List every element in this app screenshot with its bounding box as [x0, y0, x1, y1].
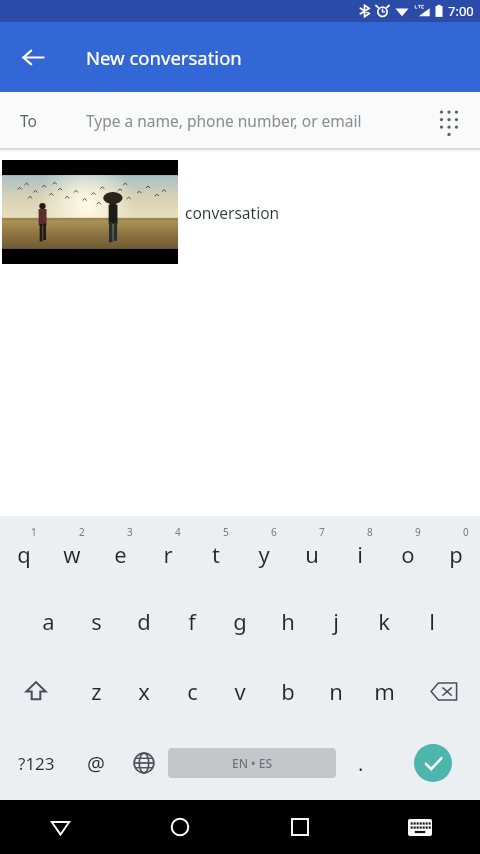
button[interactable]: Backspace	[408, 656, 480, 726]
staticText: i	[357, 539, 363, 569]
staticText: v	[234, 676, 246, 706]
staticText: t	[212, 539, 220, 569]
button[interactable]: q	[0, 516, 48, 586]
button[interactable]: h	[264, 586, 312, 656]
button[interactable]: u	[288, 516, 336, 586]
button[interactable]: l	[408, 586, 456, 656]
staticText: m	[374, 676, 395, 706]
staticText: l	[429, 606, 435, 636]
staticText: s	[91, 606, 102, 636]
button[interactable]: m	[360, 656, 408, 726]
staticText: w	[63, 539, 81, 569]
staticText: n	[329, 676, 343, 706]
staticText: u	[305, 539, 319, 569]
button[interactable]: o	[384, 516, 432, 586]
staticText: conversation	[185, 202, 280, 223]
staticText: h	[281, 606, 295, 636]
button[interactable]: b	[264, 656, 312, 726]
button[interactable]: v	[216, 656, 264, 726]
button[interactable]: c	[168, 656, 216, 726]
staticText: e	[114, 539, 127, 569]
staticText: To	[20, 110, 37, 131]
staticText: o	[401, 539, 415, 569]
button[interactable]: k	[360, 586, 408, 656]
button[interactable]: n	[312, 656, 360, 726]
button[interactable]: Space	[168, 748, 336, 778]
staticText: f	[188, 606, 196, 636]
staticText: .	[358, 750, 364, 777]
staticText: 0	[463, 525, 469, 539]
button[interactable]: j	[312, 586, 360, 656]
staticText: q	[17, 539, 31, 569]
button[interactable]: Home	[120, 800, 240, 854]
staticText: b	[281, 676, 295, 706]
button[interactable]: a	[24, 586, 72, 656]
staticText: 2	[79, 525, 85, 539]
staticText: 8	[367, 525, 373, 539]
button[interactable]: Shift	[0, 656, 72, 726]
button[interactable]: x	[120, 656, 168, 726]
button[interactable]: f	[168, 586, 216, 656]
button[interactable]: y	[240, 516, 288, 586]
button[interactable]: To	[0, 92, 480, 148]
staticText: c	[187, 676, 198, 706]
staticText: r	[163, 539, 173, 569]
button[interactable]: Back	[9, 33, 57, 81]
staticText: 9	[415, 525, 421, 539]
staticText: y	[258, 539, 270, 569]
button[interactable]: .	[336, 726, 386, 800]
staticText: g	[233, 606, 247, 636]
staticText: x	[138, 676, 150, 706]
staticText: 5	[223, 525, 229, 539]
staticText: 6	[271, 525, 277, 539]
button[interactable]: Change language	[120, 726, 168, 800]
staticText: EN • ES	[232, 755, 273, 771]
staticText: Type a name, phone number, or email	[86, 110, 362, 131]
button[interactable]: e	[96, 516, 144, 586]
button[interactable]: Recents	[240, 800, 360, 854]
button[interactable]: Dialpad	[427, 98, 471, 142]
staticText: 7:00	[448, 2, 474, 20]
staticText: 4	[175, 525, 181, 539]
button[interactable]: Hide keyboard	[360, 800, 480, 854]
staticText: a	[42, 606, 55, 636]
button[interactable]: @	[72, 726, 120, 800]
staticText: p	[449, 539, 463, 569]
staticText: ?123	[18, 752, 55, 775]
staticText: 7	[319, 525, 325, 539]
button[interactable]: s	[72, 586, 120, 656]
staticText: @	[87, 750, 105, 777]
button[interactable]: g	[216, 586, 264, 656]
button[interactable]: z	[72, 656, 120, 726]
button[interactable]: d	[120, 586, 168, 656]
staticText: 1	[31, 525, 37, 539]
button[interactable]: conversation	[0, 152, 480, 272]
staticText: 3	[127, 525, 133, 539]
button[interactable]: i	[336, 516, 384, 586]
button[interactable]: w	[48, 516, 96, 586]
button[interactable]: Back	[0, 800, 120, 854]
staticText: j	[333, 606, 339, 636]
button[interactable]: ?123	[0, 726, 72, 800]
button[interactable]: p	[432, 516, 480, 586]
staticText: d	[137, 606, 151, 636]
staticText: k	[378, 606, 390, 636]
button[interactable]: t	[192, 516, 240, 586]
button[interactable]: r	[144, 516, 192, 586]
staticText: New conversation	[86, 45, 242, 70]
button[interactable]: Done	[414, 744, 452, 782]
staticText: z	[91, 676, 102, 706]
